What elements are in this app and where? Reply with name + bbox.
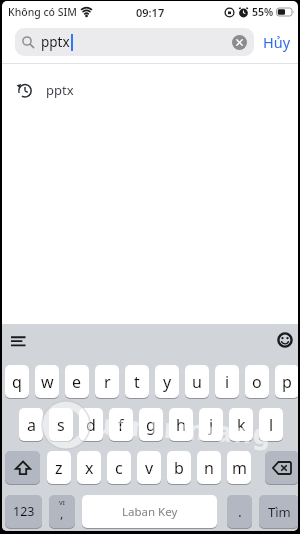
staticText: z (55, 457, 63, 479)
staticText: b (174, 457, 184, 479)
button[interactable]: VI (49, 495, 75, 528)
button[interactable]: g (139, 408, 163, 441)
staticText: l (269, 414, 274, 436)
button[interactable]: e (65, 365, 89, 398)
button[interactable]: h (169, 408, 193, 441)
staticText: 55% (252, 5, 274, 19)
staticText: p (282, 371, 292, 393)
staticText: h (176, 414, 186, 436)
button[interactable]: z (47, 451, 71, 484)
button[interactable]: . (227, 495, 252, 528)
button[interactable]: Tìm (259, 495, 298, 528)
button[interactable]: u (185, 365, 209, 398)
button[interactable]: pptx (15, 28, 254, 56)
staticText: pptx (41, 33, 70, 51)
button[interactable]: t (125, 365, 149, 398)
staticText: e (72, 371, 82, 393)
staticText: g (146, 414, 156, 436)
button[interactable]: q (5, 365, 29, 398)
staticText: m (232, 457, 247, 479)
staticText: w (41, 371, 54, 393)
button[interactable]: f (109, 408, 133, 441)
button[interactable]: m (227, 451, 251, 484)
button[interactable]: l (259, 408, 283, 441)
staticText: , (60, 504, 64, 522)
staticText: pptx (46, 81, 74, 99)
button[interactable]: c (107, 451, 131, 484)
staticText: s (57, 414, 65, 436)
button[interactable]: o (245, 365, 269, 398)
staticText: c (115, 457, 123, 479)
staticText: d (86, 414, 96, 436)
button[interactable]: j (199, 408, 223, 441)
staticText: Không có SIM (8, 5, 77, 19)
staticText: Hủy (263, 32, 291, 52)
button[interactable] (11, 336, 27, 348)
staticText: o (252, 371, 262, 393)
staticText: v (145, 457, 154, 479)
staticText: a (27, 414, 36, 436)
button[interactable]: d (79, 408, 103, 441)
button[interactable] (265, 451, 298, 484)
staticText: j (209, 414, 214, 436)
button[interactable]: a (19, 408, 43, 441)
button[interactable]: n (197, 451, 221, 484)
staticText: VI (59, 499, 65, 507)
button[interactable] (277, 332, 293, 348)
staticText: f (118, 414, 124, 436)
button[interactable]: y (155, 365, 179, 398)
staticText: i (225, 371, 230, 393)
staticText: Laban Key (122, 504, 178, 520)
button[interactable]: pptx (16, 81, 298, 99)
staticText: Tìm (268, 503, 291, 521)
staticText: y (163, 371, 172, 393)
staticText: k (237, 414, 246, 436)
button[interactable]: w (35, 365, 59, 398)
button[interactable]: s (49, 408, 73, 441)
button[interactable]: b (167, 451, 191, 484)
button[interactable]: p (275, 365, 298, 398)
button[interactable] (5, 451, 40, 484)
button[interactable]: v (137, 451, 161, 484)
staticText: 123 (13, 503, 35, 520)
button[interactable]: Laban Key (82, 495, 217, 528)
staticText: uantrimang (93, 405, 274, 452)
button[interactable]: r (95, 365, 119, 398)
staticText: t (134, 371, 140, 393)
staticText: u (192, 371, 202, 393)
button[interactable]: Hủy (263, 32, 291, 52)
staticText: n (204, 457, 214, 479)
staticText: x (85, 457, 94, 479)
staticText: q (12, 371, 22, 393)
button[interactable]: k (229, 408, 253, 441)
button[interactable]: 123 (5, 495, 42, 528)
staticText: r (104, 371, 111, 393)
staticText: 09:17 (136, 5, 165, 20)
staticText: . (238, 502, 242, 521)
button[interactable] (232, 35, 247, 50)
button[interactable]: i (215, 365, 239, 398)
button[interactable]: x (77, 451, 101, 484)
